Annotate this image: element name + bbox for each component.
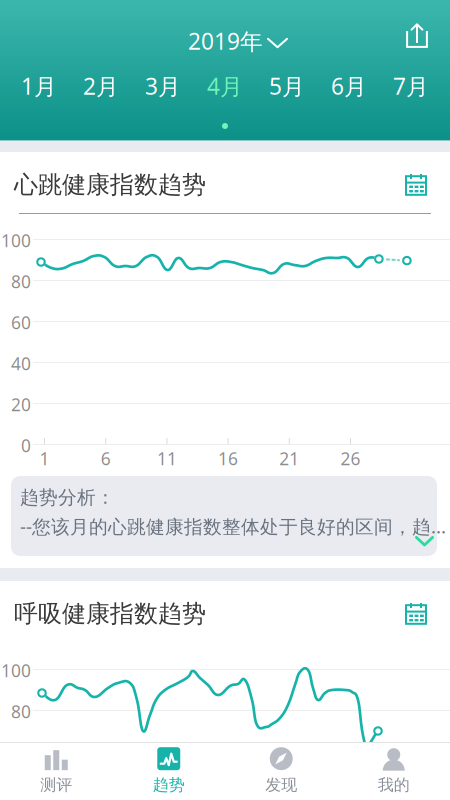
staticText: 16 [218,447,238,470]
staticText: 趋势分析： [20,486,115,509]
staticText: 我的 [378,775,410,795]
staticText: 11 [157,447,177,470]
staticText: 40 [11,352,31,375]
staticText: 5月 [269,71,305,101]
staticText: 60 [11,311,31,334]
button[interactable]: 4月 [194,74,256,129]
staticText: 6 [101,447,111,470]
staticText: 呼吸健康指数趋势 [14,599,206,628]
button[interactable]: 7月 [380,74,442,129]
button[interactable]: 5月 [256,74,318,129]
staticText: --您该月的心跳健康指数整体处于良好的区间，趋势... [20,514,446,539]
staticText: 100 [1,229,31,252]
staticText: 2月 [83,71,119,101]
staticText: 1 [39,447,49,470]
button[interactable]: Share [394,15,440,56]
staticText: 测评 [40,775,72,795]
staticText: 7月 [393,71,429,101]
staticText: 心跳健康指数趋势 [14,170,206,199]
staticText: 21 [279,447,299,470]
button[interactable]: 趋势分析： [11,476,437,556]
staticText: 3月 [145,71,181,101]
button[interactable]: 3月 [132,74,194,129]
button[interactable]: 6月 [318,74,380,129]
staticText: 4月 [207,71,243,101]
button[interactable]: Calendar [398,595,434,631]
button[interactable]: 我的 [337,742,450,800]
staticText: 发现 [265,775,297,795]
staticText: 0 [21,434,31,457]
staticText: 80 [11,270,31,293]
staticText: 1月 [21,71,57,101]
staticText: 26 [340,447,360,470]
button[interactable]: 2019年 [178,17,298,65]
staticText: 2019年 [188,26,263,56]
button[interactable]: 2月 [70,74,132,129]
button[interactable]: 1月 [8,74,70,129]
staticText: 80 [11,700,31,723]
staticText: 20 [11,393,31,416]
button[interactable]: Calendar [398,166,434,202]
button[interactable]: 趋势 [112,742,225,800]
button[interactable]: 测评 [0,742,112,800]
button[interactable]: 发现 [225,742,337,800]
staticText: 趋势 [153,775,185,795]
staticText: 100 [1,659,31,682]
staticText: 6月 [331,71,367,101]
